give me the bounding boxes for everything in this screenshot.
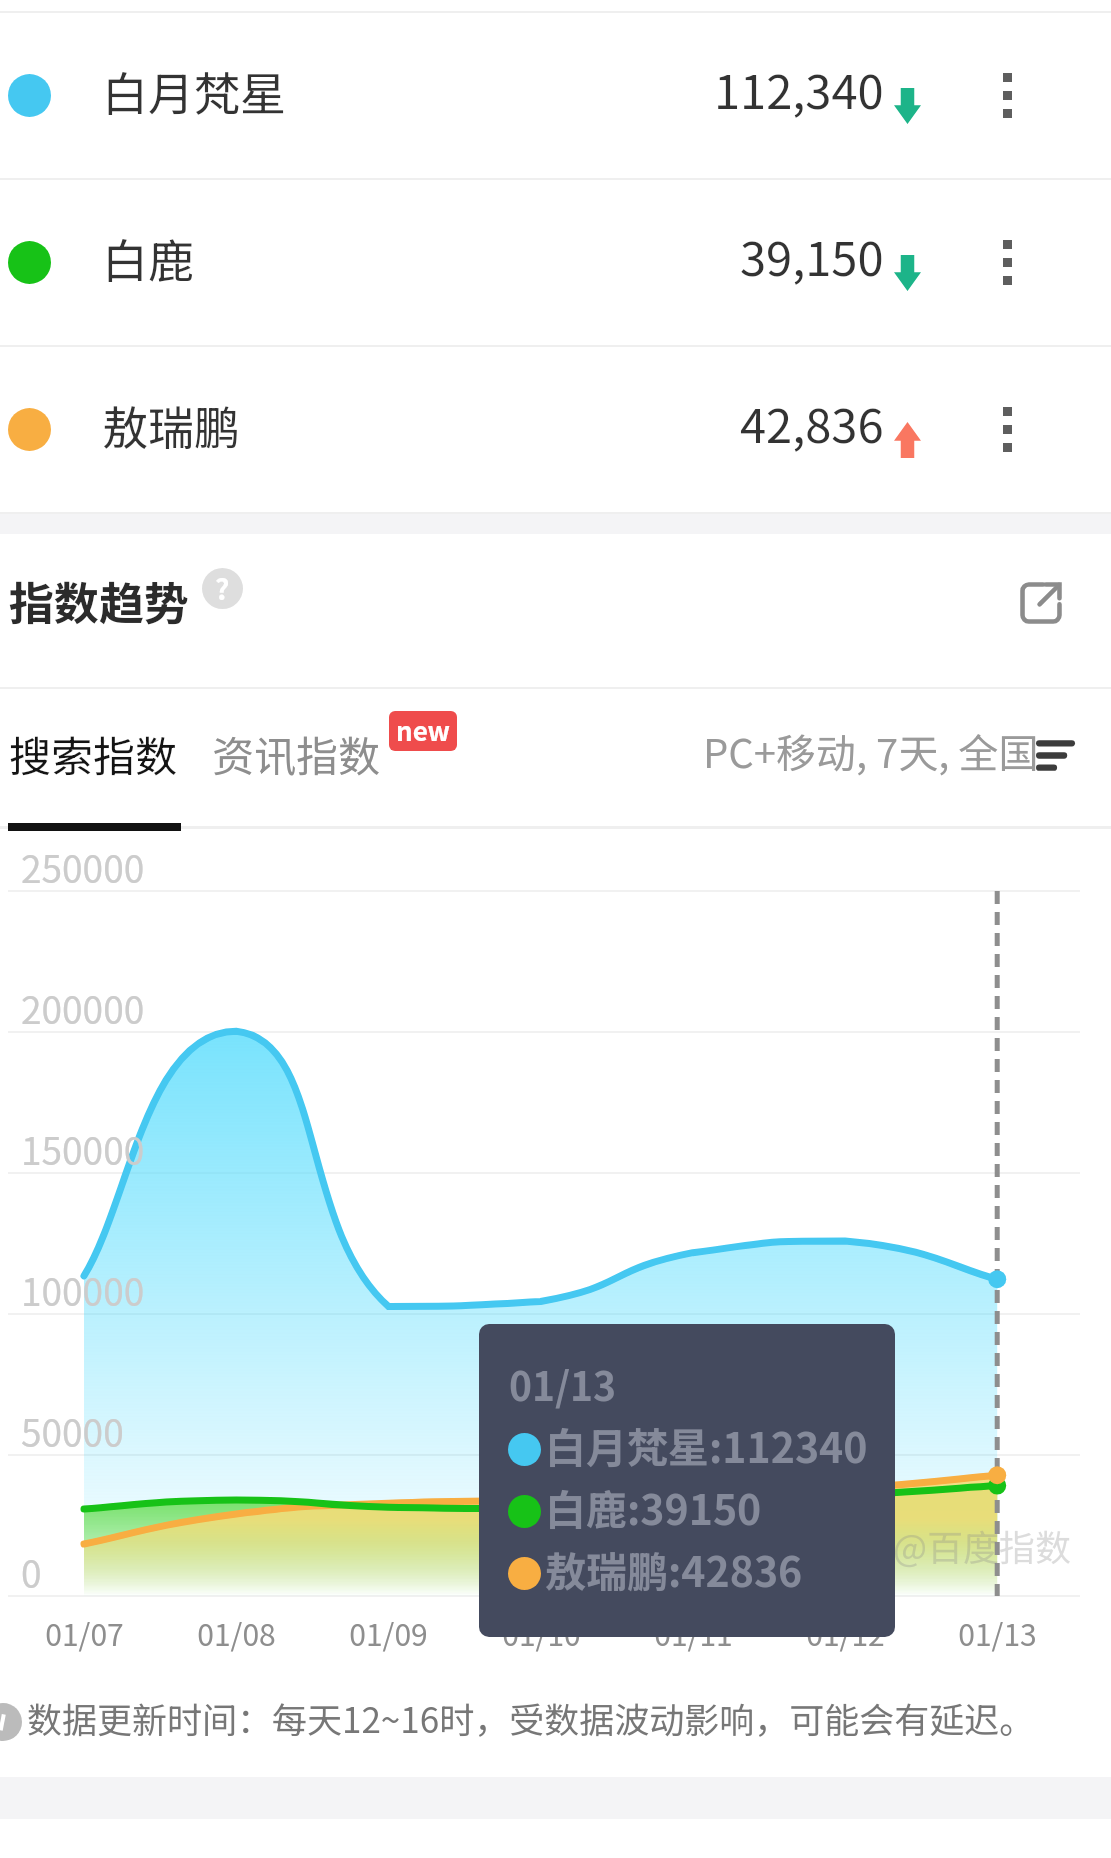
button[interactable]: 搜索指数 — [9, 723, 178, 784]
staticText: PC+移动, 7天, 全国 — [703, 722, 1039, 780]
staticText: 指数趋势 — [9, 568, 190, 633]
button[interactable]: More options — [960, 49, 1054, 142]
staticText: 200000 — [21, 981, 145, 1035]
staticText: new — [396, 711, 450, 749]
staticText: 资讯指数 — [212, 723, 381, 784]
button[interactable]: 白鹿 — [0, 179, 1111, 346]
staticText: 01/13 — [958, 1611, 1037, 1654]
staticText: 01/08 — [197, 1611, 276, 1654]
button[interactable]: PC+移动, 7天, 全国 — [696, 721, 1082, 781]
staticText: 白月梵星 — [102, 58, 286, 125]
staticText: 42,836 — [740, 388, 884, 456]
staticText: 01/07 — [45, 1611, 124, 1654]
staticText: 01/11 — [654, 1611, 733, 1654]
staticText: 01/12 — [806, 1611, 885, 1654]
button[interactable]: 资讯指数 — [212, 723, 381, 784]
button[interactable]: 白月梵星 — [0, 12, 1111, 179]
staticText: 150000 — [21, 1122, 145, 1176]
staticText: 01/10 — [502, 1611, 581, 1654]
button[interactable]: More options — [960, 216, 1054, 309]
staticText: 白月梵星:112340 — [545, 1415, 868, 1474]
staticText: 112,340 — [714, 54, 884, 122]
staticText: 白鹿 — [102, 225, 194, 292]
staticText: 39,150 — [740, 221, 884, 289]
staticText: ? — [215, 568, 230, 609]
staticText: 250000 — [21, 840, 145, 894]
button[interactable]: More options — [960, 383, 1054, 476]
staticText: 敖瑞鹏 — [102, 392, 240, 459]
staticText: 敖瑞鹏:42836 — [545, 1539, 803, 1598]
staticText: @百度指数 — [893, 1519, 1072, 1571]
staticText: 0 — [21, 1545, 42, 1599]
staticText: 01/09 — [349, 1611, 428, 1654]
button[interactable]: 敖瑞鹏 — [0, 346, 1111, 513]
staticText: 01/13 — [509, 1356, 617, 1412]
staticText: 白鹿:39150 — [545, 1477, 762, 1536]
button[interactable]: Open in new window — [1010, 572, 1072, 634]
staticText: 数据更新时间：每天12~16时，受数据波动影响，可能会有延迟。 — [27, 1692, 1035, 1743]
staticText: 100000 — [21, 1263, 145, 1317]
button[interactable]: 指数趋势 — [0, 534, 1111, 670]
staticText: 50000 — [21, 1404, 124, 1458]
staticText: 搜索指数 — [9, 723, 178, 784]
